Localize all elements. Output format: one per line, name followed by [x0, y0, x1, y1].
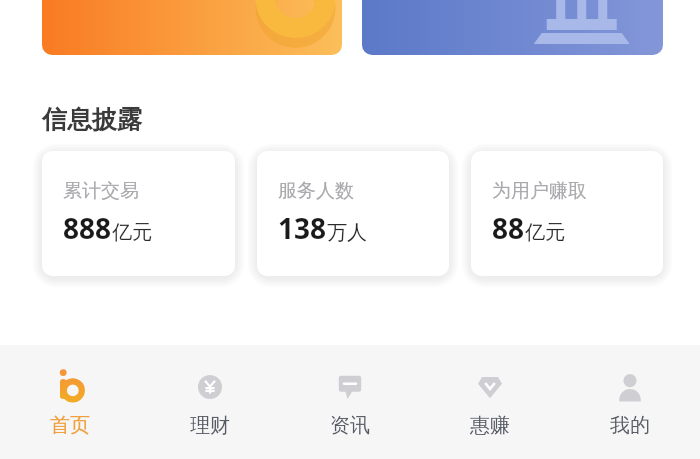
- button[interactable]: [42, 0, 342, 55]
- staticText: 亿元: [112, 220, 152, 245]
- button[interactable]: 服务人数: [257, 151, 449, 276]
- staticText: 累计交易: [63, 179, 139, 203]
- button[interactable]: 资讯: [280, 345, 420, 459]
- button[interactable]: 为用户赚取: [471, 151, 663, 276]
- staticText: 138: [278, 209, 327, 247]
- button[interactable]: [362, 0, 663, 55]
- staticText: 惠赚: [470, 413, 510, 438]
- button[interactable]: 我的: [560, 345, 700, 459]
- button[interactable]: 首页: [0, 345, 140, 459]
- button[interactable]: 累计交易: [42, 151, 235, 276]
- staticText: 服务人数: [278, 179, 354, 203]
- staticText: 888: [63, 209, 112, 247]
- staticText: 资讯: [330, 413, 370, 438]
- staticText: 万人: [327, 220, 367, 245]
- staticText: 首页: [50, 413, 90, 438]
- staticText: 亿元: [525, 220, 565, 245]
- staticText: 我的: [610, 413, 650, 438]
- button[interactable]: 惠赚: [420, 345, 560, 459]
- staticText: 为用户赚取: [492, 179, 587, 203]
- button[interactable]: 理财: [140, 345, 280, 459]
- staticText: 88: [492, 209, 525, 247]
- staticText: 理财: [190, 413, 230, 438]
- staticText: 信息披露: [42, 104, 142, 135]
